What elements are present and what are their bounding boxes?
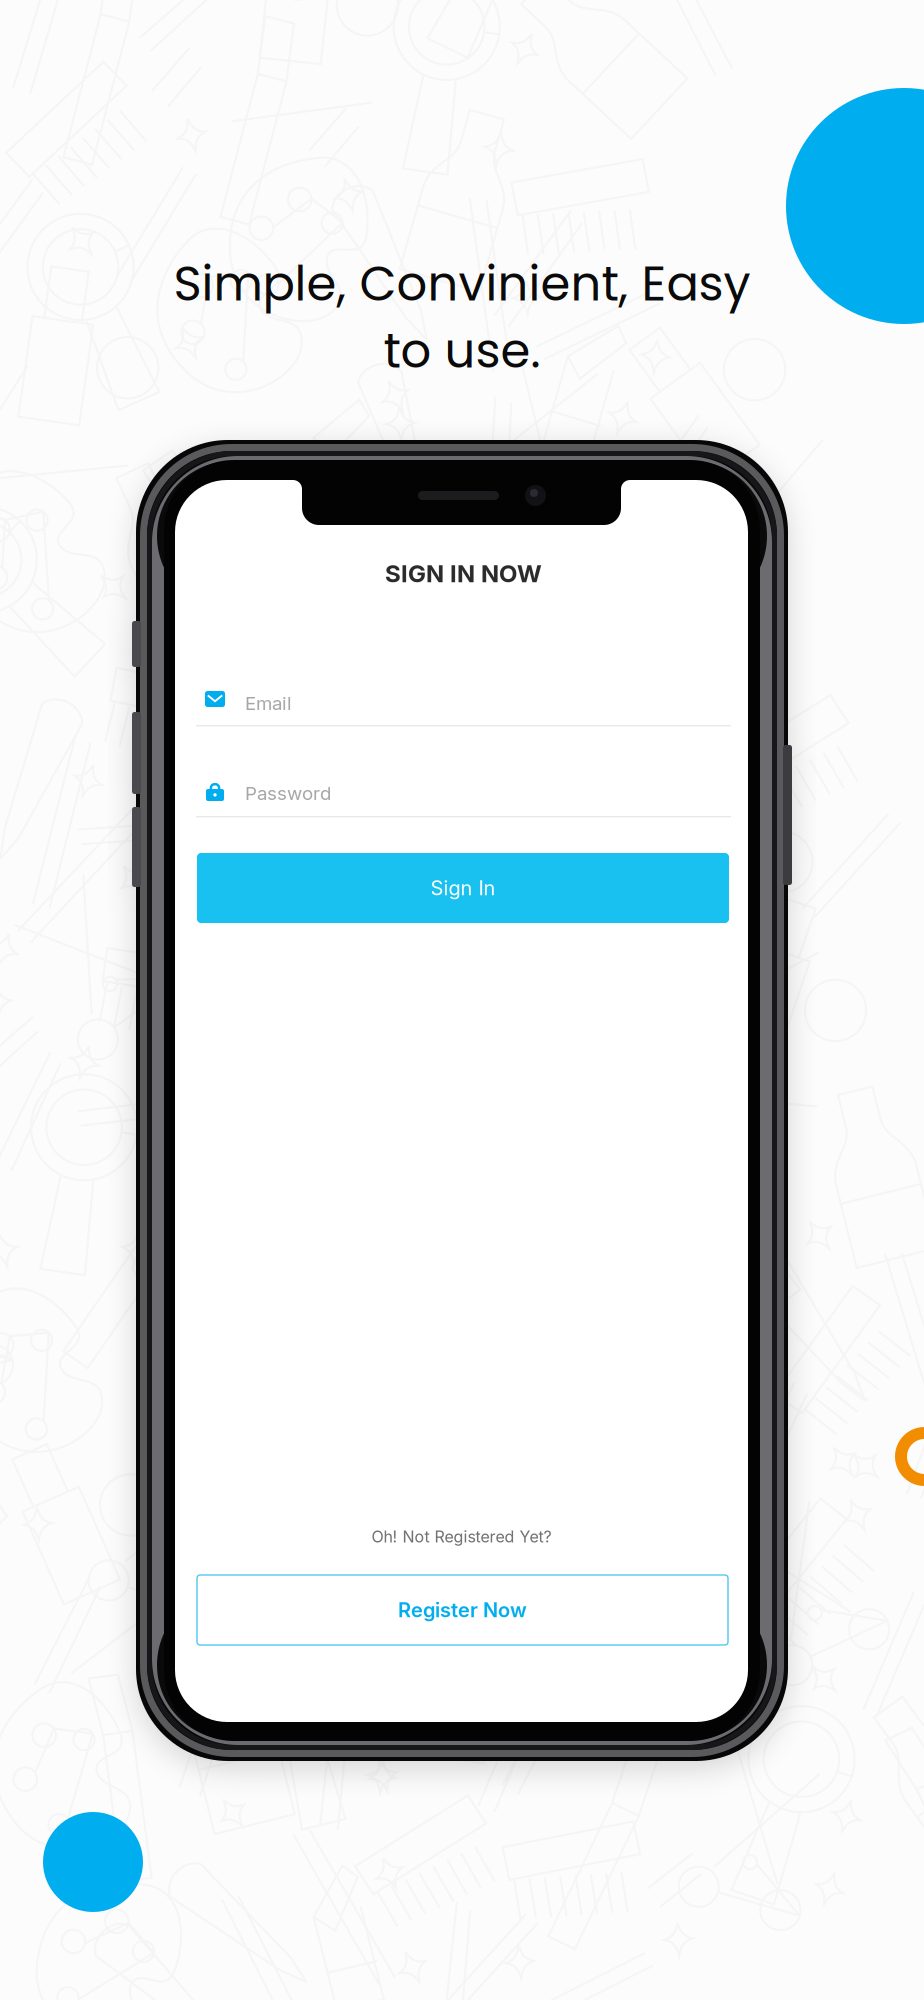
staticText: SIGN IN NOW (385, 559, 542, 588)
button[interactable]: Register Now (197, 1575, 728, 1645)
staticText: Register Now (398, 1598, 527, 1622)
staticText: to use. (383, 317, 540, 384)
staticText: Email (245, 692, 292, 715)
staticText: Oh! Not Registered Yet? (371, 1527, 551, 1546)
button[interactable]: Sign In (197, 853, 729, 923)
staticText: Sign In (430, 876, 495, 900)
staticText: Password (245, 782, 331, 805)
staticText: Simple, Convinient, Easy (173, 250, 750, 317)
